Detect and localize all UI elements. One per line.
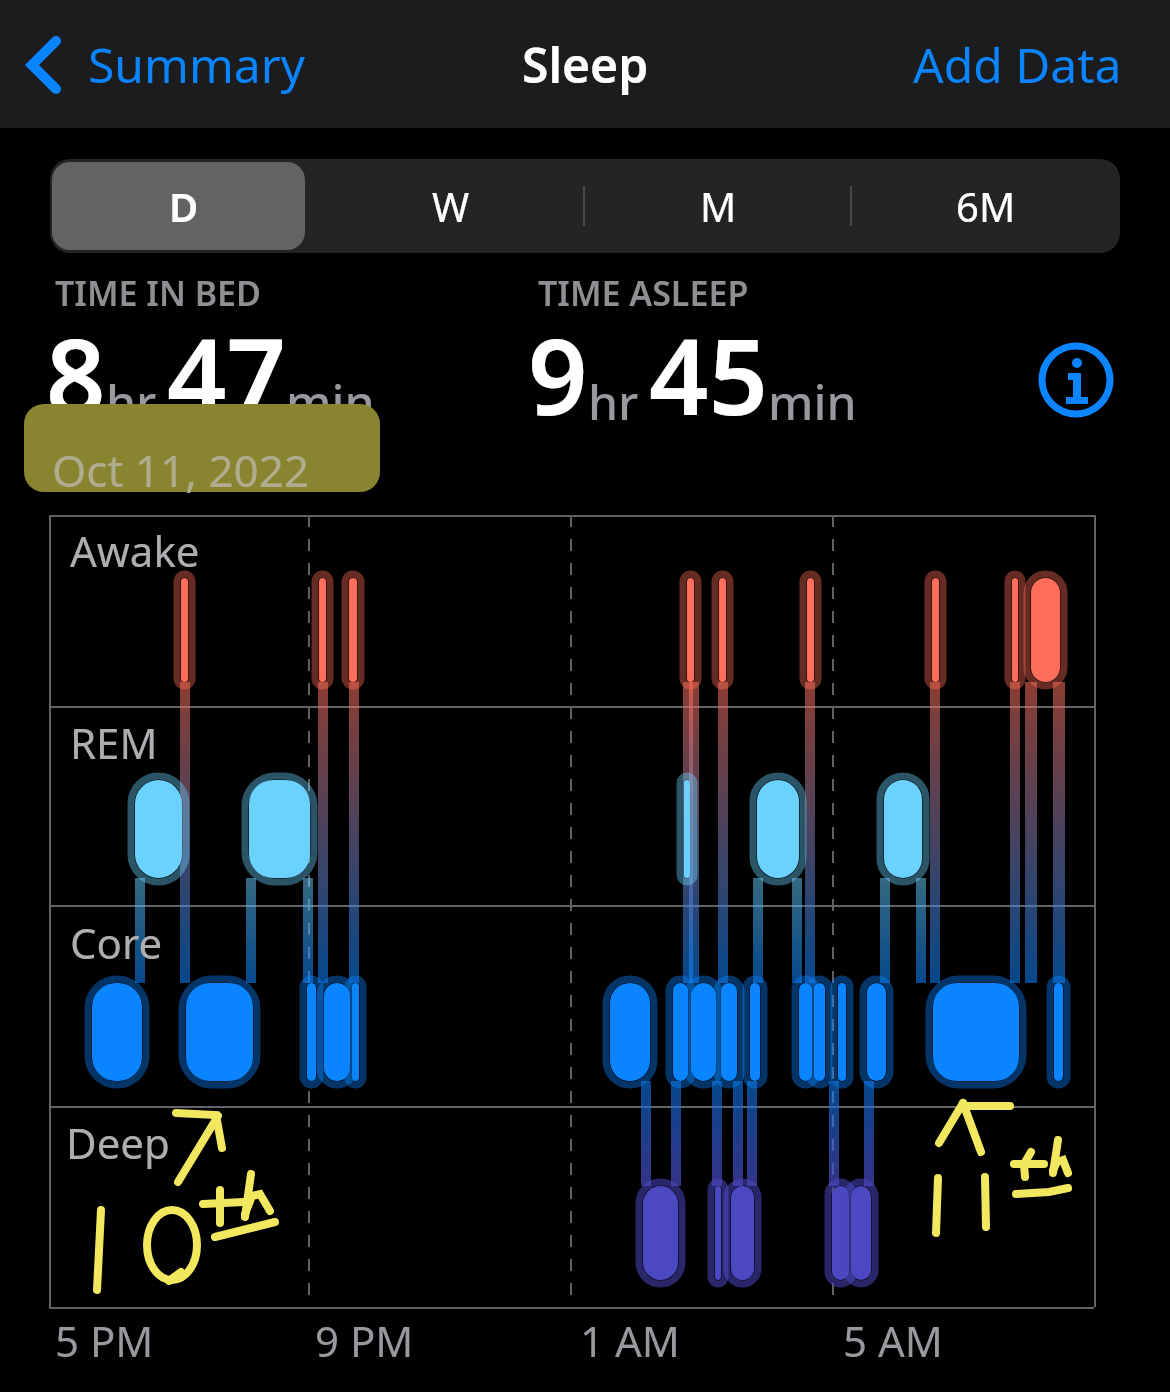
staticText: 6M <box>956 179 1016 233</box>
staticText: Awake <box>70 522 200 579</box>
staticText: hr <box>106 369 157 434</box>
staticText: Sleep <box>522 32 649 97</box>
staticText: Summary <box>88 32 306 97</box>
button[interactable]: D <box>50 159 317 253</box>
staticText: TIME IN BED <box>55 270 261 316</box>
staticText: min <box>286 369 375 434</box>
staticText: 9 PM <box>315 1312 414 1369</box>
button[interactable]: Summary <box>26 32 306 97</box>
staticText: 1 AM <box>580 1312 680 1369</box>
button[interactable]: W <box>317 159 584 253</box>
staticText: 45 <box>649 304 768 446</box>
staticText: W <box>432 179 470 233</box>
button[interactable] <box>1040 344 1112 416</box>
staticText: min <box>768 369 857 434</box>
button[interactable]: 6M <box>852 159 1120 253</box>
button[interactable]: M <box>584 159 852 253</box>
staticText: 5 AM <box>843 1312 943 1369</box>
staticText: D <box>169 179 199 233</box>
staticText: Deep <box>66 1114 170 1171</box>
staticText: M <box>700 179 737 233</box>
staticText: Add Data <box>913 32 1122 97</box>
staticText: Core <box>70 914 163 971</box>
staticText: 9 <box>528 304 588 446</box>
staticText: Oct 11, 2022 <box>52 440 310 500</box>
staticText: hr <box>588 369 639 434</box>
button[interactable]: Add Data <box>913 32 1122 97</box>
staticText: 47 <box>167 304 286 446</box>
staticText: REM <box>70 714 158 771</box>
staticText: TIME ASLEEP <box>538 270 749 316</box>
staticText: 8 <box>46 304 106 446</box>
staticText: 5 PM <box>55 1312 154 1369</box>
